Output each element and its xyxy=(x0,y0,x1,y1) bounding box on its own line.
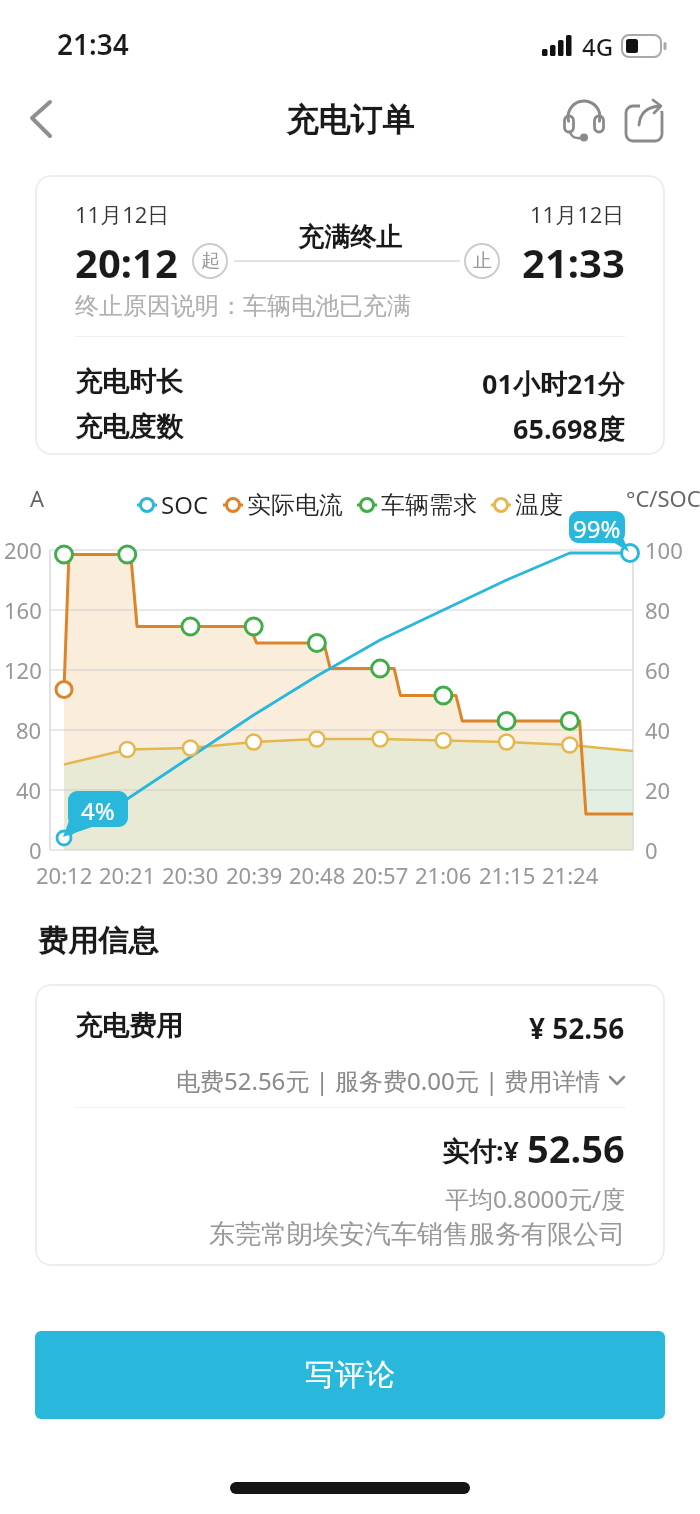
button[interactable] xyxy=(561,98,605,142)
staticText: 20:21 xyxy=(99,860,156,890)
staticText: 11月12日 xyxy=(75,199,170,229)
staticText: 4% xyxy=(81,794,115,827)
staticText: 20:12 xyxy=(75,235,178,289)
staticText: 20:30 xyxy=(162,860,219,890)
staticText: 0 xyxy=(29,835,42,865)
staticText: 99% xyxy=(573,512,621,545)
button[interactable]: 电费52.56元 | 服务费0.00元 | 费用详情 xyxy=(176,1064,625,1097)
staticText: 车辆需求 xyxy=(381,490,477,520)
staticText: 止 xyxy=(473,249,492,273)
staticText: 0 xyxy=(645,835,658,865)
staticText: 11月12日 xyxy=(530,199,625,229)
staticText: 电费52.56元 | 服务费0.00元 | 费用详情 xyxy=(176,1064,601,1097)
staticText: 实付:¥ xyxy=(442,1132,527,1169)
staticText: 160 xyxy=(4,595,42,625)
staticText: 费用信息 xyxy=(38,922,158,960)
staticText: ¥ 52.56 xyxy=(529,1009,625,1047)
staticText: 21:24 xyxy=(542,860,599,890)
staticText: 20:39 xyxy=(226,860,283,890)
staticText: 充满终止 xyxy=(298,221,402,254)
staticText: 80 xyxy=(16,715,42,745)
staticText: 21:15 xyxy=(479,860,536,890)
staticText: 100 xyxy=(645,535,683,565)
staticText: 起 xyxy=(201,249,220,273)
staticText: °C/SOC xyxy=(626,483,700,513)
button[interactable] xyxy=(20,98,64,142)
staticText: 80 xyxy=(645,595,671,625)
staticText: 200 xyxy=(4,535,42,565)
staticText: 平均0.8000元/度 xyxy=(445,1182,625,1215)
staticText: 20 xyxy=(645,775,671,805)
staticText: 21:06 xyxy=(415,860,472,890)
staticText: 120 xyxy=(4,655,42,685)
staticText: 21:33 xyxy=(522,235,625,289)
staticText: 40 xyxy=(645,715,671,745)
button[interactable] xyxy=(623,98,667,142)
staticText: 实际电流 xyxy=(247,490,343,520)
staticText: 52.56 xyxy=(527,1122,625,1174)
staticText: 40 xyxy=(16,775,42,805)
staticText: 01小时21分 xyxy=(482,365,625,402)
staticText: 充电时长 xyxy=(75,365,183,399)
staticText: 充电费用 xyxy=(75,1009,183,1043)
staticText: 写评论 xyxy=(305,1356,395,1394)
staticText: 65.698度 xyxy=(513,410,625,447)
button[interactable]: 写评论 xyxy=(35,1331,665,1419)
staticText: 温度 xyxy=(515,490,563,520)
staticText: 终止原因说明：车辆电池已充满 xyxy=(75,291,411,321)
staticText: A xyxy=(30,483,45,513)
staticText: 21:34 xyxy=(57,25,129,63)
staticText: 充电度数 xyxy=(75,410,183,444)
staticText: 20:12 xyxy=(36,860,93,890)
staticText: 20:48 xyxy=(289,860,346,890)
staticText: SOC xyxy=(161,488,209,521)
staticText: 4G xyxy=(582,30,614,63)
staticText: 充电订单 xyxy=(286,100,414,140)
staticText: 20:57 xyxy=(352,860,409,890)
staticText: 东莞常朗埃安汽车销售服务有限公司 xyxy=(209,1218,625,1251)
staticText: 60 xyxy=(645,655,671,685)
